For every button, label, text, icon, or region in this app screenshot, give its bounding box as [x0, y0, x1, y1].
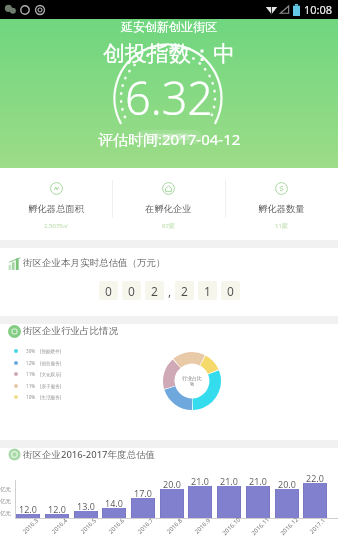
staticText: 2016.12	[279, 515, 301, 537]
staticText: 街区企业2016-2017年度总估值	[23, 448, 156, 461]
staticText: 了解"创投指数"	[145, 132, 193, 142]
staticText: 30%	[26, 348, 36, 354]
staticText: 亿元	[0, 498, 11, 505]
staticText: 2	[181, 283, 188, 299]
button[interactable]: 在孵化企业	[112, 168, 225, 240]
staticText: (亲子服务)	[40, 383, 62, 389]
staticText: 街区企业行业占比情况	[23, 325, 118, 337]
staticText: 12.0	[19, 503, 37, 515]
staticText: 孵化器总面积	[28, 203, 84, 215]
staticText: (文化娱乐)	[40, 371, 62, 377]
staticText: 11家	[275, 222, 288, 230]
staticText: 22.0	[306, 472, 324, 484]
staticText: 2016.5	[79, 517, 98, 536]
staticText: (创业服务)	[40, 360, 62, 366]
staticText: 创投指数：中	[103, 40, 235, 68]
staticText: 0	[105, 283, 112, 299]
staticText: 评估时间:2017-04-12	[98, 129, 241, 149]
staticText: 20.0	[163, 478, 181, 490]
staticText: 行业占比 %	[182, 375, 202, 387]
button[interactable]: 孵化器总面积	[0, 168, 112, 240]
staticText: 6.32	[125, 67, 214, 128]
staticText: (生活服务)	[40, 394, 62, 400]
staticText: 10%	[26, 394, 36, 400]
staticText: 在孵化企业	[145, 203, 192, 215]
staticText: 67家	[162, 222, 175, 230]
staticText: 21.0	[249, 475, 267, 487]
staticText: 延安创新创业街区	[121, 19, 217, 34]
staticText: 亿元	[0, 486, 11, 493]
staticText: 11%	[26, 371, 36, 377]
staticText: 亿元	[0, 510, 11, 517]
staticText: 2016.8	[165, 517, 184, 536]
staticText: 21.0	[191, 475, 209, 487]
staticText: 2016.10	[221, 515, 243, 537]
button[interactable]: 了解"创投指数"	[145, 132, 193, 142]
staticText: 2016.3	[21, 517, 40, 536]
staticText: 2016.7	[136, 517, 155, 536]
staticText: 2017.1	[308, 517, 327, 536]
staticText: 0	[227, 283, 234, 299]
staticText: 2.5075㎡	[44, 222, 69, 230]
staticText: 孵化器数量	[258, 203, 305, 215]
staticText: ,	[168, 283, 172, 299]
staticText: 12.0	[48, 503, 66, 515]
staticText: 0	[128, 283, 135, 299]
staticText: 20.0	[278, 478, 296, 490]
staticText: 2	[151, 283, 158, 299]
staticText: 2016.6	[107, 517, 126, 536]
staticText: 2016.4	[50, 517, 69, 536]
staticText: 2016.9	[193, 517, 212, 536]
button[interactable]: 孵化器数量	[225, 168, 338, 240]
staticText: (智能硬件)	[40, 348, 62, 354]
staticText: 17.0	[134, 487, 152, 499]
staticText: 2016.11	[250, 515, 272, 537]
staticText: 11%	[26, 383, 36, 389]
staticText: 12%	[26, 360, 36, 366]
staticText: 街区企业本月实时总估值（万元）	[23, 257, 166, 269]
staticText: 1	[204, 283, 211, 299]
staticText: 14.0	[105, 497, 123, 509]
staticText: 21.0	[220, 475, 238, 487]
staticText: 10:08	[304, 2, 333, 17]
staticText: 13.0	[77, 500, 95, 512]
